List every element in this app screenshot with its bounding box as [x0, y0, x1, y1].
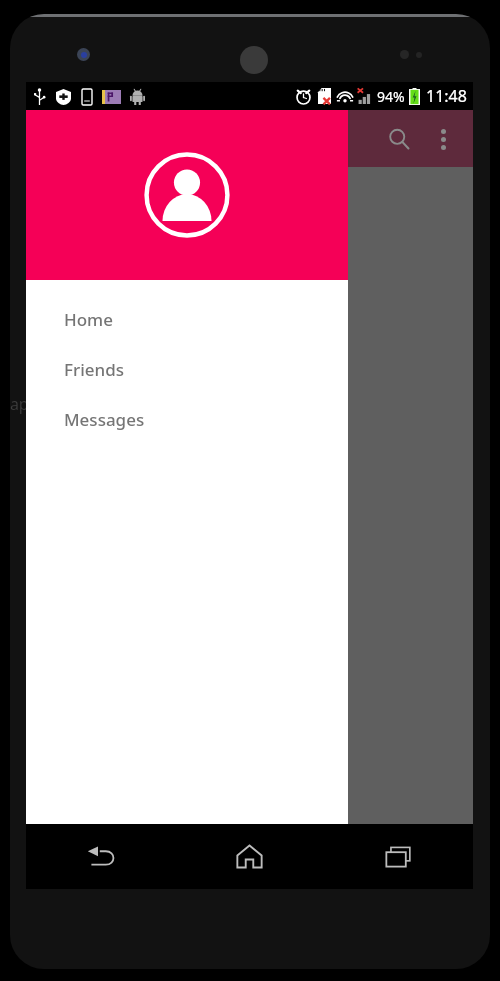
staticText: Friends	[64, 358, 124, 381]
button[interactable]: Messages	[26, 394, 348, 444]
staticText: Home	[64, 308, 113, 331]
button[interactable]: Recent apps	[324, 824, 473, 889]
staticText: Change appearance	[10, 393, 99, 415]
staticText: 94%	[377, 87, 405, 106]
button[interactable]: Home	[26, 294, 348, 344]
button[interactable]: Search	[375, 115, 423, 163]
staticText: Messages	[64, 408, 145, 431]
button[interactable]: Back	[26, 824, 175, 889]
button[interactable]: Home	[175, 824, 324, 889]
button[interactable]: More options	[423, 119, 463, 159]
staticText: 11:48	[426, 85, 467, 107]
button[interactable]: Friends	[26, 344, 348, 394]
